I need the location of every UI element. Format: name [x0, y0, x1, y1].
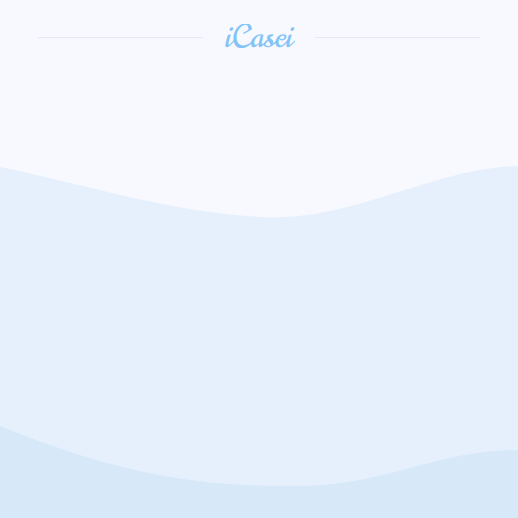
button[interactable]: iCasei [38, 16, 480, 59]
staticText: iCasei [225, 16, 293, 59]
